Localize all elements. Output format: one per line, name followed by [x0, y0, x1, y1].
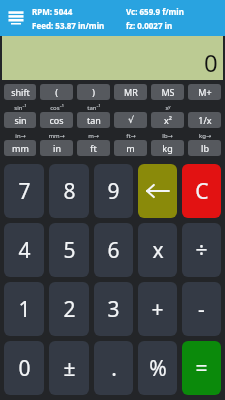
staticText: x²	[164, 114, 172, 126]
staticText: in	[53, 142, 61, 154]
staticText: 9	[107, 177, 120, 206]
staticText: (	[55, 86, 58, 98]
button[interactable]: tan	[77, 112, 110, 128]
button[interactable]: %	[138, 341, 177, 395]
staticText: 5	[63, 236, 76, 265]
staticText: fz: 0.0027 in	[126, 20, 173, 31]
staticText: m	[126, 142, 135, 154]
button[interactable]: kg	[151, 140, 184, 156]
staticText: =	[195, 354, 208, 383]
button[interactable]: MR	[114, 84, 147, 100]
button[interactable]: sin	[4, 112, 36, 128]
button[interactable]: lb	[188, 140, 221, 156]
staticText: tan⁻¹	[87, 104, 101, 112]
button[interactable]: x	[138, 223, 177, 277]
staticText: 0	[18, 354, 31, 383]
staticText: mm	[12, 142, 29, 154]
staticText: ÷	[195, 236, 208, 265]
staticText: cos	[49, 114, 64, 126]
staticText: kg→	[199, 132, 211, 140]
button[interactable]: =	[182, 341, 221, 395]
staticText: Feed: 53.87 in/min	[32, 20, 105, 31]
button[interactable]: M+	[188, 84, 221, 100]
staticText: 1	[18, 295, 31, 324]
staticText: 7	[18, 177, 31, 206]
staticText: %	[149, 354, 167, 383]
staticText: +	[151, 295, 164, 324]
staticText: kg	[162, 142, 173, 154]
button[interactable]: 6	[94, 223, 133, 277]
staticText: Vc: 659.9 f/min	[126, 6, 184, 17]
button[interactable]: shift	[4, 84, 36, 100]
staticText: 4	[18, 236, 31, 265]
staticText: MR	[124, 86, 138, 98]
button[interactable]: Menu	[0, 0, 32, 36]
button[interactable]: cos	[40, 112, 73, 128]
staticText: -	[198, 295, 205, 324]
staticText: 8	[63, 177, 76, 206]
button[interactable]: .	[94, 341, 133, 395]
staticText: tan	[87, 114, 101, 126]
staticText: MS	[161, 86, 175, 98]
button[interactable]: 1/x	[188, 112, 221, 128]
staticText: .	[111, 354, 117, 383]
button[interactable]: +	[138, 282, 177, 336]
staticText: in→	[15, 132, 26, 140]
staticText: sin⁻¹	[14, 104, 27, 112]
staticText: M+	[198, 86, 212, 98]
staticText: ±	[63, 354, 76, 383]
button[interactable]: 2	[49, 282, 89, 336]
staticText: cos⁻¹	[50, 104, 64, 112]
staticText: 0	[204, 46, 218, 79]
button[interactable]: ±	[49, 341, 89, 395]
staticText: 6	[107, 236, 120, 265]
staticText: 2	[63, 295, 76, 324]
staticText: 1/x	[198, 114, 212, 126]
button[interactable]: 9	[94, 164, 133, 218]
button[interactable]: (	[40, 84, 73, 100]
staticText: lb	[201, 142, 209, 154]
button[interactable]: 4	[4, 223, 44, 277]
staticText: RPM: 5044	[32, 6, 73, 17]
button[interactable]: )	[77, 84, 110, 100]
button[interactable]: x²	[151, 112, 184, 128]
staticText: )	[92, 86, 95, 98]
button[interactable]: 0	[4, 341, 44, 395]
staticText: x	[152, 236, 164, 265]
button[interactable]: √	[114, 112, 147, 128]
button[interactable]: 8	[49, 164, 89, 218]
staticText: shift	[11, 86, 30, 98]
button[interactable]: 7	[4, 164, 44, 218]
button[interactable]: MS	[151, 84, 184, 100]
button[interactable]: ÷	[182, 223, 221, 277]
button[interactable]: ft	[77, 140, 110, 156]
staticText: √	[128, 115, 134, 125]
staticText: m→	[88, 132, 99, 140]
button[interactable]: Backspace	[138, 164, 177, 218]
staticText: ft→	[126, 132, 136, 140]
staticText: sin	[14, 114, 27, 126]
button[interactable]: 1	[4, 282, 44, 336]
button[interactable]: m	[114, 140, 147, 156]
button[interactable]: C	[182, 164, 221, 218]
staticText: lb→	[162, 132, 173, 140]
button[interactable]: in	[40, 140, 73, 156]
staticText: C	[195, 177, 209, 206]
button[interactable]: mm	[4, 140, 36, 156]
staticText: xʸ	[165, 104, 171, 112]
staticText: 3	[107, 295, 120, 324]
staticText: mm→	[48, 132, 65, 140]
staticText: ft	[90, 142, 97, 154]
button[interactable]: 3	[94, 282, 133, 336]
button[interactable]: 5	[49, 223, 89, 277]
button[interactable]: -	[182, 282, 221, 336]
